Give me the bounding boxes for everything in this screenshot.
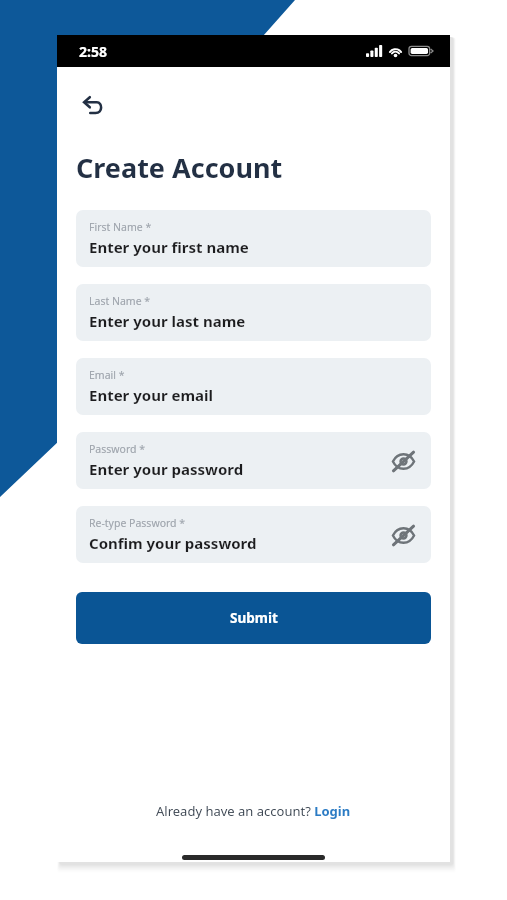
staticText: Email * [89,368,125,382]
staticText: Enter your first name [89,237,249,257]
staticText: Submit [230,609,278,627]
button[interactable]: Already have an account? Login [156,802,351,820]
staticText: Last Name * [89,294,151,308]
staticText: Enter your last name [89,311,246,331]
button[interactable]: Toggle password visibility [385,517,421,553]
button[interactable]: Email * [76,358,431,415]
button[interactable]: Toggle password visibility [385,443,421,479]
staticText: Create Account [76,149,283,186]
button[interactable]: Back [71,85,113,127]
button[interactable]: Re-type Password * [76,506,431,563]
button[interactable]: Password * [76,432,431,489]
staticText: Enter your email [89,385,214,405]
button[interactable]: Submit [76,592,431,644]
button[interactable]: Last Name * [76,284,431,341]
staticText: 2:58 [79,42,107,61]
staticText: Enter your password [89,459,244,479]
staticText: Password * [89,442,146,456]
staticText: Already have an account? Login [156,802,351,820]
staticText: Re-type Password * [89,516,186,530]
button[interactable]: First Name * [76,210,431,267]
staticText: First Name * [89,220,152,234]
staticText: Confim your password [89,533,257,553]
